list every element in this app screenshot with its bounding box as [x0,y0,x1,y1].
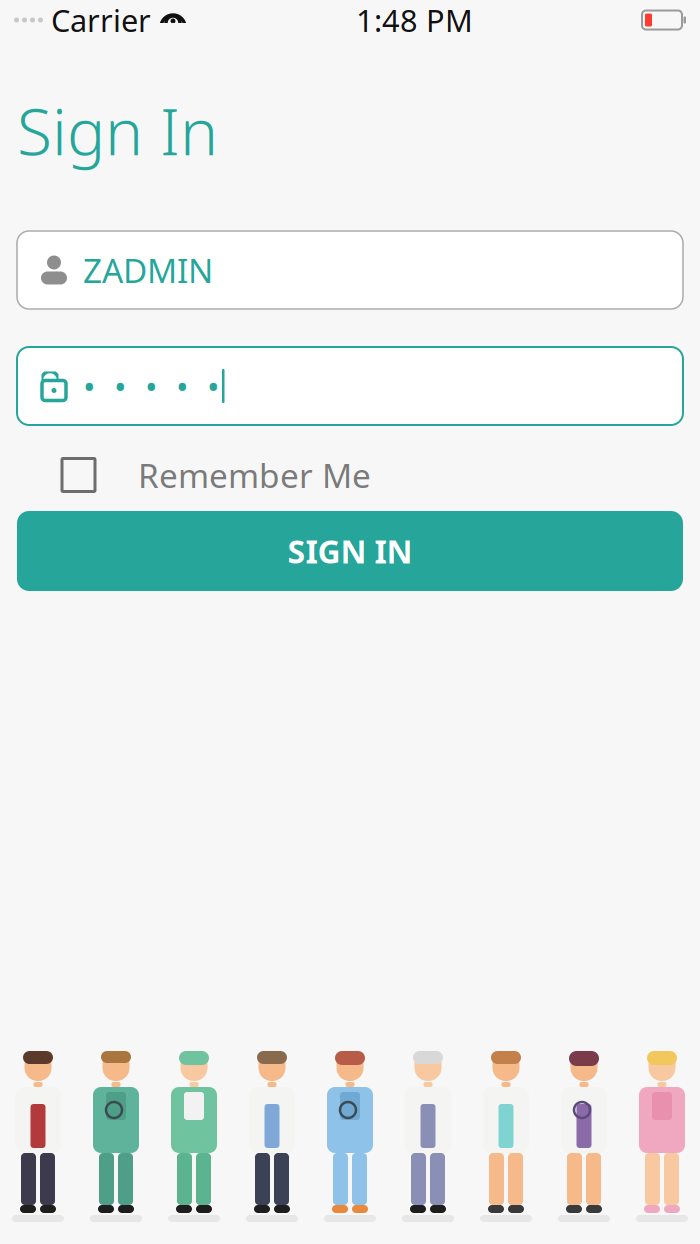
button[interactable]: • • • • • [17,347,683,425]
staticText: SIGN IN [287,530,412,572]
staticText: • • • • • [83,364,220,408]
button[interactable]: SIGN IN [17,511,683,591]
button[interactable]: Remember Me [0,443,700,507]
staticText: ZADMIN [83,248,213,292]
staticText: 1:48 PM [356,0,473,40]
staticText: Sign In [17,88,218,173]
staticText: Remember Me [138,453,371,497]
staticText: Carrier [51,0,151,40]
button[interactable]: ZADMIN [17,231,683,309]
